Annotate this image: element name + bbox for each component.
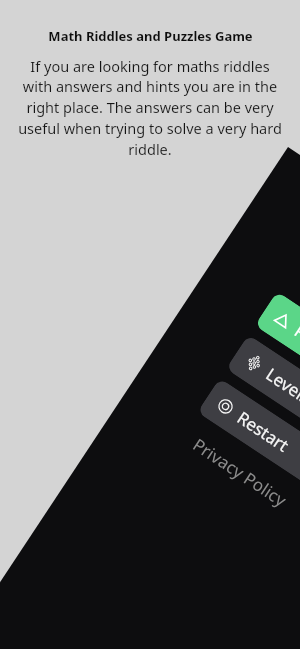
staticText: Restart	[233, 406, 294, 457]
button[interactable]: Levels	[226, 335, 300, 453]
staticText: If you are looking for maths riddles wit…	[15, 56, 285, 160]
staticText: Privacy Policy	[189, 433, 291, 512]
staticText: Play	[290, 319, 300, 357]
staticText: Levels	[262, 362, 300, 409]
staticText: Math Riddles and Puzzles Game	[48, 27, 253, 45]
button[interactable]: Restart	[197, 378, 300, 496]
other: Play	[272, 309, 293, 330]
button[interactable]: Privacy Policy	[189, 433, 291, 512]
other: Restart	[215, 396, 236, 417]
other: Levels	[244, 353, 265, 373]
button[interactable]: Play	[254, 291, 300, 409]
